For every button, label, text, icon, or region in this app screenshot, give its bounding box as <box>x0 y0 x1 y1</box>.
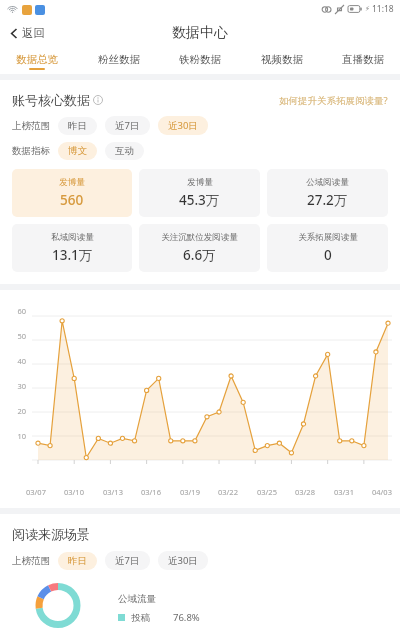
staticText: 27.2万 <box>307 191 348 209</box>
staticText: 铁粉数据 <box>179 53 221 66</box>
staticText: 40 <box>6 356 26 366</box>
button[interactable]: 近7日 <box>105 116 150 135</box>
staticText: 投稿 <box>131 612 150 624</box>
staticText: 30 <box>6 381 26 391</box>
button[interactable]: 粉丝数据 <box>96 53 142 70</box>
staticText: 关注沉默位发阅读量 <box>161 232 238 243</box>
staticText: 560 <box>60 191 84 209</box>
staticText: 45.3万 <box>179 191 220 209</box>
staticText: 近7日 <box>115 119 140 132</box>
staticText: 粉丝数据 <box>98 53 140 66</box>
button[interactable]: 返回 <box>0 22 55 44</box>
staticText: ⚡ <box>365 5 370 13</box>
staticText: 私域阅读量 <box>51 232 94 243</box>
staticText: 03/10 <box>64 487 84 497</box>
staticText: 直播数据 <box>342 53 384 66</box>
button[interactable]: 私域阅读量 <box>12 224 132 272</box>
staticText: 公域流量 <box>118 593 156 605</box>
button[interactable]: 关注沉默位发阅读量 <box>139 224 260 272</box>
staticText: 近30日 <box>168 119 198 132</box>
button[interactable]: 直播数据 <box>340 53 386 70</box>
staticText: 03/28 <box>295 487 315 497</box>
staticText: 发博量 <box>187 177 213 188</box>
button[interactable]: 数据总览 <box>14 53 60 70</box>
staticText: 03/25 <box>257 487 277 497</box>
staticText: 13.1万 <box>52 246 93 264</box>
staticText: 03/07 <box>26 487 46 497</box>
staticText: 04/03 <box>372 487 392 497</box>
staticText: 博文 <box>68 145 87 157</box>
staticText: 20 <box>6 406 26 416</box>
staticText: 公域阅读量 <box>306 177 349 188</box>
button[interactable]: 如何提升关系拓展阅读量? <box>279 94 388 107</box>
button[interactable]: 关系拓展阅读量 <box>267 224 388 272</box>
staticText: 返回 <box>22 26 45 40</box>
staticText: 近30日 <box>168 554 198 567</box>
staticText: 阅读来源场景 <box>12 526 90 542</box>
staticText: 数据总览 <box>16 53 58 66</box>
staticText: 50 <box>6 331 26 341</box>
button[interactable]: Info <box>93 95 103 105</box>
staticText: 上榜范围 <box>12 555 50 567</box>
button[interactable]: 公域阅读量 <box>267 169 388 217</box>
staticText: 账号核心数据 <box>12 92 90 108</box>
staticText: 11:18 <box>372 3 394 15</box>
staticText: 关系拓展阅读量 <box>298 232 358 243</box>
button[interactable]: 昨日 <box>58 552 97 570</box>
staticText: 上榜范围 <box>12 120 50 132</box>
staticText: 视频数据 <box>261 53 303 66</box>
staticText: 03/19 <box>180 487 200 497</box>
button[interactable]: 近30日 <box>158 551 208 570</box>
staticText: 6.6万 <box>183 246 216 264</box>
staticText: 76.8% <box>173 611 200 624</box>
button[interactable]: 发博量 <box>139 169 260 217</box>
staticText: 03/22 <box>218 487 238 497</box>
staticText: 昨日 <box>68 120 87 132</box>
staticText: 数据指标 <box>12 145 50 157</box>
button[interactable]: 昨日 <box>58 117 97 135</box>
button[interactable]: 博文 <box>58 142 97 160</box>
staticText: 近7日 <box>115 554 140 567</box>
staticText: 60 <box>6 306 26 316</box>
button[interactable]: 近30日 <box>158 116 208 135</box>
staticText: 03/16 <box>141 487 161 497</box>
staticText: 03/31 <box>334 487 354 497</box>
staticText: 数据中心 <box>172 24 228 42</box>
button[interactable]: 视频数据 <box>259 53 305 70</box>
button[interactable]: 近7日 <box>105 551 150 570</box>
staticText: 昨日 <box>68 555 87 567</box>
staticText: 发博量 <box>59 177 85 188</box>
staticText: 互动 <box>115 145 134 157</box>
button[interactable]: 互动 <box>105 142 144 160</box>
button[interactable]: 铁粉数据 <box>177 53 223 70</box>
button[interactable]: 发博量 <box>12 169 132 217</box>
staticText: 03/13 <box>103 487 123 497</box>
staticText: 10 <box>6 431 26 441</box>
staticText: 0 <box>324 246 332 264</box>
